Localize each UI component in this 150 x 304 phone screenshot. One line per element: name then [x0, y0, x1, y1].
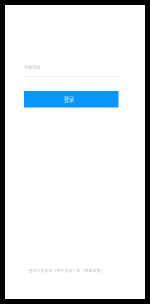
staticText: 登录代表同意《用户协议》和《隐私政策》 [28, 268, 104, 273]
staticText: 登录 [64, 95, 74, 103]
button[interactable]: 登录 [24, 91, 118, 107]
staticText: 手机号码 [24, 64, 40, 70]
